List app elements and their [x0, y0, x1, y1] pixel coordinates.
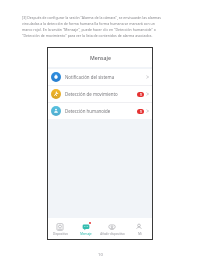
button[interactable]: Notificación del sistema	[47, 69, 153, 85]
staticText: [3] Después de configurar la sesión "Ala…	[22, 15, 179, 20]
staticText: "Detección de movimiento" para ver la li…	[22, 33, 179, 38]
staticText: 10	[98, 252, 103, 258]
staticText: 1	[140, 93, 142, 97]
staticText: vinculadas a la detección de forma human…	[22, 21, 179, 26]
staticText: Mensaje	[90, 54, 111, 61]
button[interactable]: Mi	[126, 218, 153, 240]
staticText: Mi	[138, 232, 142, 236]
button[interactable]: Añadir dispositivo	[99, 218, 126, 240]
button[interactable]: Mensaje	[73, 218, 99, 240]
staticText: Notificación del sistema	[65, 74, 115, 80]
button[interactable]: Dispositivo	[47, 218, 73, 240]
button[interactable]: Detección humanoide	[47, 103, 153, 119]
staticText: Detección humanoide	[65, 108, 111, 114]
staticText: Detección de movimiento	[65, 91, 118, 97]
staticText: Dispositivo	[53, 232, 68, 236]
staticText: marco rojo). En la sesión "Mensaje", pue…	[22, 27, 179, 32]
button[interactable]: Detección de movimiento	[47, 86, 153, 102]
staticText: 1	[140, 110, 142, 114]
staticText: Mensaje	[80, 232, 92, 236]
staticText: Añadir dispositivo	[100, 232, 125, 236]
